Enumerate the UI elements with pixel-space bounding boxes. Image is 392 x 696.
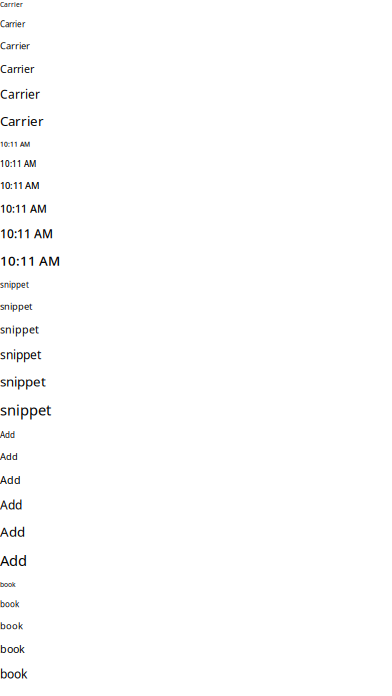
staticText: book: [0, 619, 23, 632]
staticText: Carrier: [0, 39, 30, 52]
staticText: Add: [0, 450, 18, 463]
staticText: Add: [0, 523, 25, 540]
staticText: 10:11 AM: [0, 140, 30, 149]
staticText: 10:11 AM: [0, 179, 40, 192]
staticText: snippet: [0, 300, 32, 312]
staticText: snippet: [0, 346, 41, 362]
staticText: Add: [0, 550, 27, 570]
staticText: Add: [0, 497, 22, 513]
staticText: Add: [0, 430, 15, 440]
staticText: Carrier: [0, 0, 23, 9]
staticText: snippet: [0, 400, 51, 420]
staticText: 10:11 AM: [0, 252, 60, 269]
staticText: Carrier: [0, 62, 34, 76]
staticText: snippet: [0, 322, 39, 337]
staticText: 10:11 AM: [0, 158, 36, 169]
staticText: Carrier: [0, 112, 44, 130]
staticText: snippet: [0, 279, 29, 290]
staticText: book: [0, 599, 19, 609]
staticText: Add: [0, 473, 21, 487]
staticText: Carrier: [0, 19, 25, 29]
staticText: 10:11 AM: [0, 226, 53, 242]
staticText: book: [0, 666, 27, 682]
staticText: snippet: [0, 372, 46, 390]
staticText: book: [0, 580, 16, 589]
staticText: Carrier: [0, 86, 40, 102]
staticText: 10:11 AM: [0, 201, 47, 216]
staticText: book: [0, 642, 25, 656]
